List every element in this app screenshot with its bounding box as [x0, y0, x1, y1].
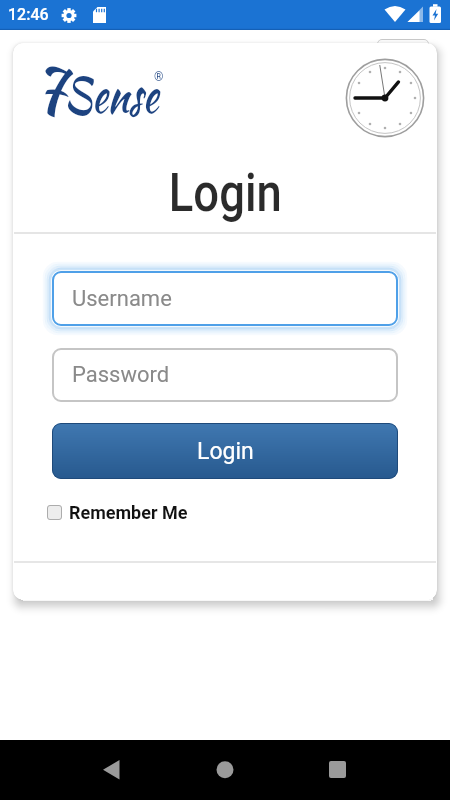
staticText: 7	[34, 46, 65, 136]
staticText: Login	[197, 438, 254, 465]
staticText: ®	[154, 70, 164, 84]
staticText: Remember Me	[69, 502, 188, 523]
staticText: Username	[72, 286, 172, 312]
button[interactable]: Login	[52, 423, 398, 479]
staticText: Password	[72, 362, 170, 388]
staticText: Sense	[64, 60, 159, 130]
button[interactable]: Password	[52, 348, 398, 402]
staticText: 12:46	[8, 5, 49, 24]
button[interactable]: Username	[52, 271, 398, 326]
button[interactable]	[314, 752, 362, 788]
staticText: Login	[169, 161, 282, 224]
button[interactable]: Remember Me	[47, 502, 188, 523]
button[interactable]	[95, 752, 143, 788]
button[interactable]	[201, 752, 249, 788]
